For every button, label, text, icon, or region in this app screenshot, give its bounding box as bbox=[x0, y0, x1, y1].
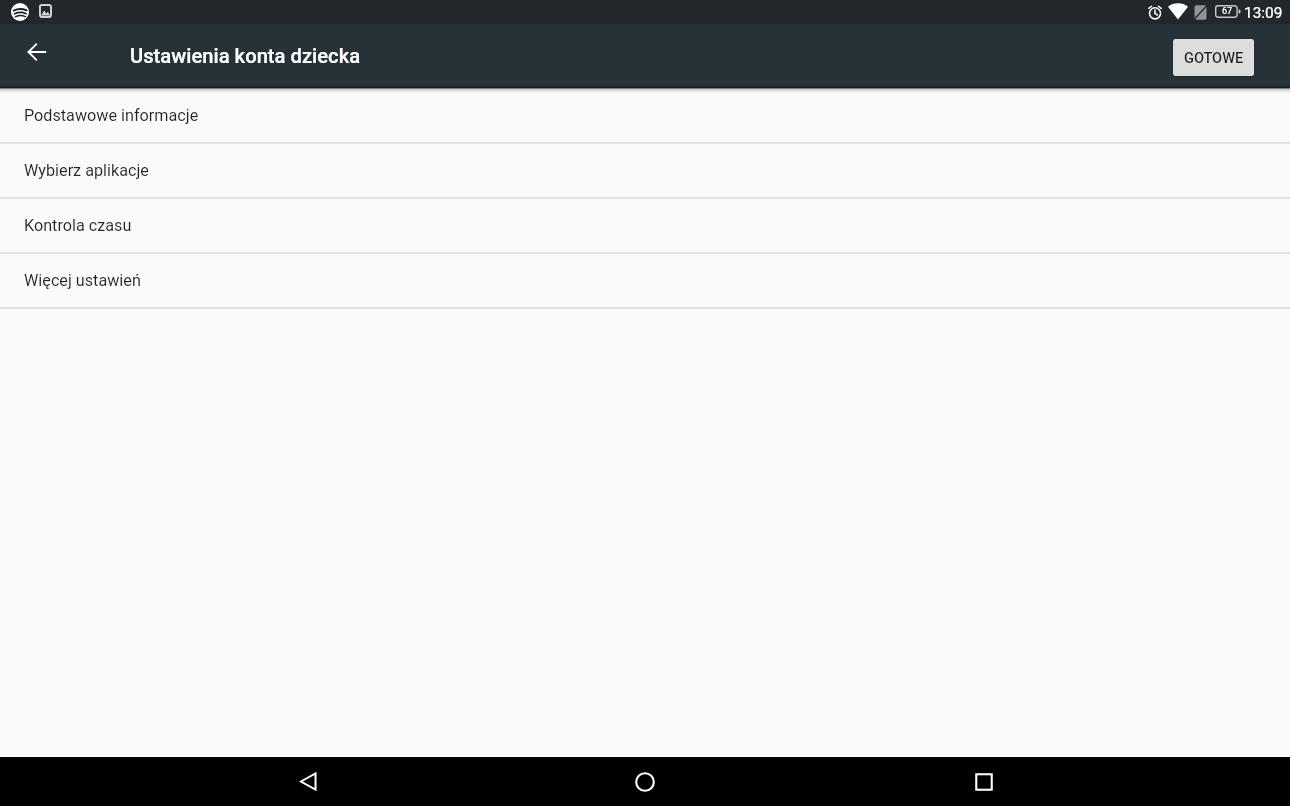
button[interactable]: Kontrola czasu bbox=[0, 199, 1290, 252]
button[interactable]: Home bbox=[620, 757, 670, 806]
button[interactable]: Recents bbox=[959, 757, 1009, 806]
staticText: Podstawowe informacje bbox=[24, 106, 199, 125]
staticText: GOTOWE bbox=[1184, 49, 1244, 66]
button[interactable]: Więcej ustawień bbox=[0, 254, 1290, 307]
button[interactable]: Back bbox=[13, 28, 61, 76]
staticText: Wybierz aplikacje bbox=[24, 161, 149, 180]
button[interactable]: Podstawowe informacje bbox=[0, 88, 1290, 142]
staticText: 13:09 bbox=[1244, 4, 1283, 22]
staticText: Ustawienia konta dziecka bbox=[130, 44, 361, 68]
button[interactable]: GOTOWE bbox=[1173, 39, 1254, 76]
staticText: 67 bbox=[1222, 6, 1233, 17]
staticText: Kontrola czasu bbox=[24, 216, 132, 235]
button[interactable]: Navigate back bbox=[283, 757, 333, 806]
staticText: Więcej ustawień bbox=[24, 271, 141, 290]
button[interactable]: Wybierz aplikacje bbox=[0, 144, 1290, 197]
